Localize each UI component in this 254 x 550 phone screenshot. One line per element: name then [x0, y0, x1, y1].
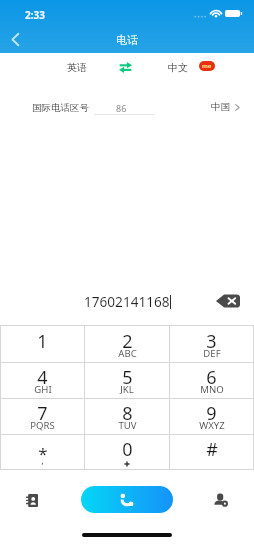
- button[interactable]: Contacts: [16, 487, 48, 513]
- staticText: WXYZ: [199, 419, 225, 432]
- button[interactable]: 6: [170, 363, 253, 398]
- button[interactable]: 0: [85, 435, 169, 469]
- button[interactable]: Backspace: [212, 288, 244, 314]
- staticText: 86: [116, 102, 127, 114]
- button[interactable]: #: [170, 435, 253, 469]
- staticText: 0: [122, 437, 133, 462]
- staticText: MNO: [200, 383, 224, 396]
- staticText: ,: [41, 454, 44, 467]
- button[interactable]: 3: [170, 326, 253, 362]
- button[interactable]: 英语: [67, 61, 87, 74]
- staticText: 8: [122, 401, 133, 426]
- button[interactable]: 5: [85, 363, 169, 398]
- staticText: 17602141168: [84, 292, 170, 311]
- button[interactable]: Back: [2, 28, 28, 50]
- staticText: GHI: [34, 383, 52, 396]
- button[interactable]: 国际电话区号: [32, 102, 89, 114]
- staticText: 7: [37, 401, 48, 426]
- staticText: 2: [122, 329, 133, 354]
- staticText: 电话: [116, 33, 138, 47]
- staticText: 4: [37, 365, 48, 390]
- staticText: 5: [122, 365, 133, 390]
- staticText: TUV: [118, 419, 137, 432]
- staticText: me: [202, 62, 212, 70]
- button[interactable]: 9: [170, 399, 253, 434]
- button[interactable]: 中国: [211, 101, 242, 113]
- button[interactable]: me: [199, 61, 215, 71]
- button[interactable]: 中文: [168, 61, 188, 74]
- staticText: ABC: [118, 347, 137, 360]
- button[interactable]: 8: [85, 399, 169, 434]
- button[interactable]: Call: [81, 486, 173, 513]
- button[interactable]: 1: [1, 326, 84, 362]
- button[interactable]: 4: [1, 363, 84, 398]
- staticText: 1: [37, 329, 48, 354]
- staticText: PQRS: [30, 419, 55, 432]
- button[interactable]: 7: [1, 399, 84, 434]
- button[interactable]: *: [1, 435, 84, 469]
- button[interactable]: Add contact: [205, 487, 237, 513]
- staticText: *: [38, 442, 48, 465]
- staticText: 2:33: [25, 8, 45, 22]
- button[interactable]: 2: [85, 326, 169, 362]
- staticText: 9: [206, 401, 217, 426]
- staticText: DEF: [203, 347, 221, 360]
- staticText: 3: [206, 329, 217, 354]
- button[interactable]: Swap languages: [110, 57, 140, 77]
- staticText: JKL: [120, 383, 134, 396]
- staticText: #: [206, 437, 218, 462]
- staticText: 中国: [211, 101, 230, 113]
- staticText: 6: [206, 365, 217, 390]
